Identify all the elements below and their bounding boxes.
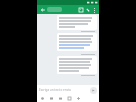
button[interactable]: Location [76,96,81,101]
button[interactable] [57,33,97,51]
staticText: Escriga un text o envia [39,88,71,92]
button[interactable]: Back [39,6,46,13]
button[interactable]: Send [90,87,97,94]
button[interactable] [57,15,97,30]
button[interactable]: Escriga un text o envia [39,88,89,92]
button[interactable]: Sticker [67,96,72,101]
button[interactable]: Emoji [40,96,45,101]
button[interactable] [57,56,97,74]
button[interactable]: More options [91,7,97,13]
button[interactable]: Attach image [77,6,84,13]
button[interactable]: Call [84,6,91,13]
button[interactable]: Camera [58,96,63,101]
button[interactable]: Gallery [49,96,54,101]
button[interactable] [47,7,62,12]
